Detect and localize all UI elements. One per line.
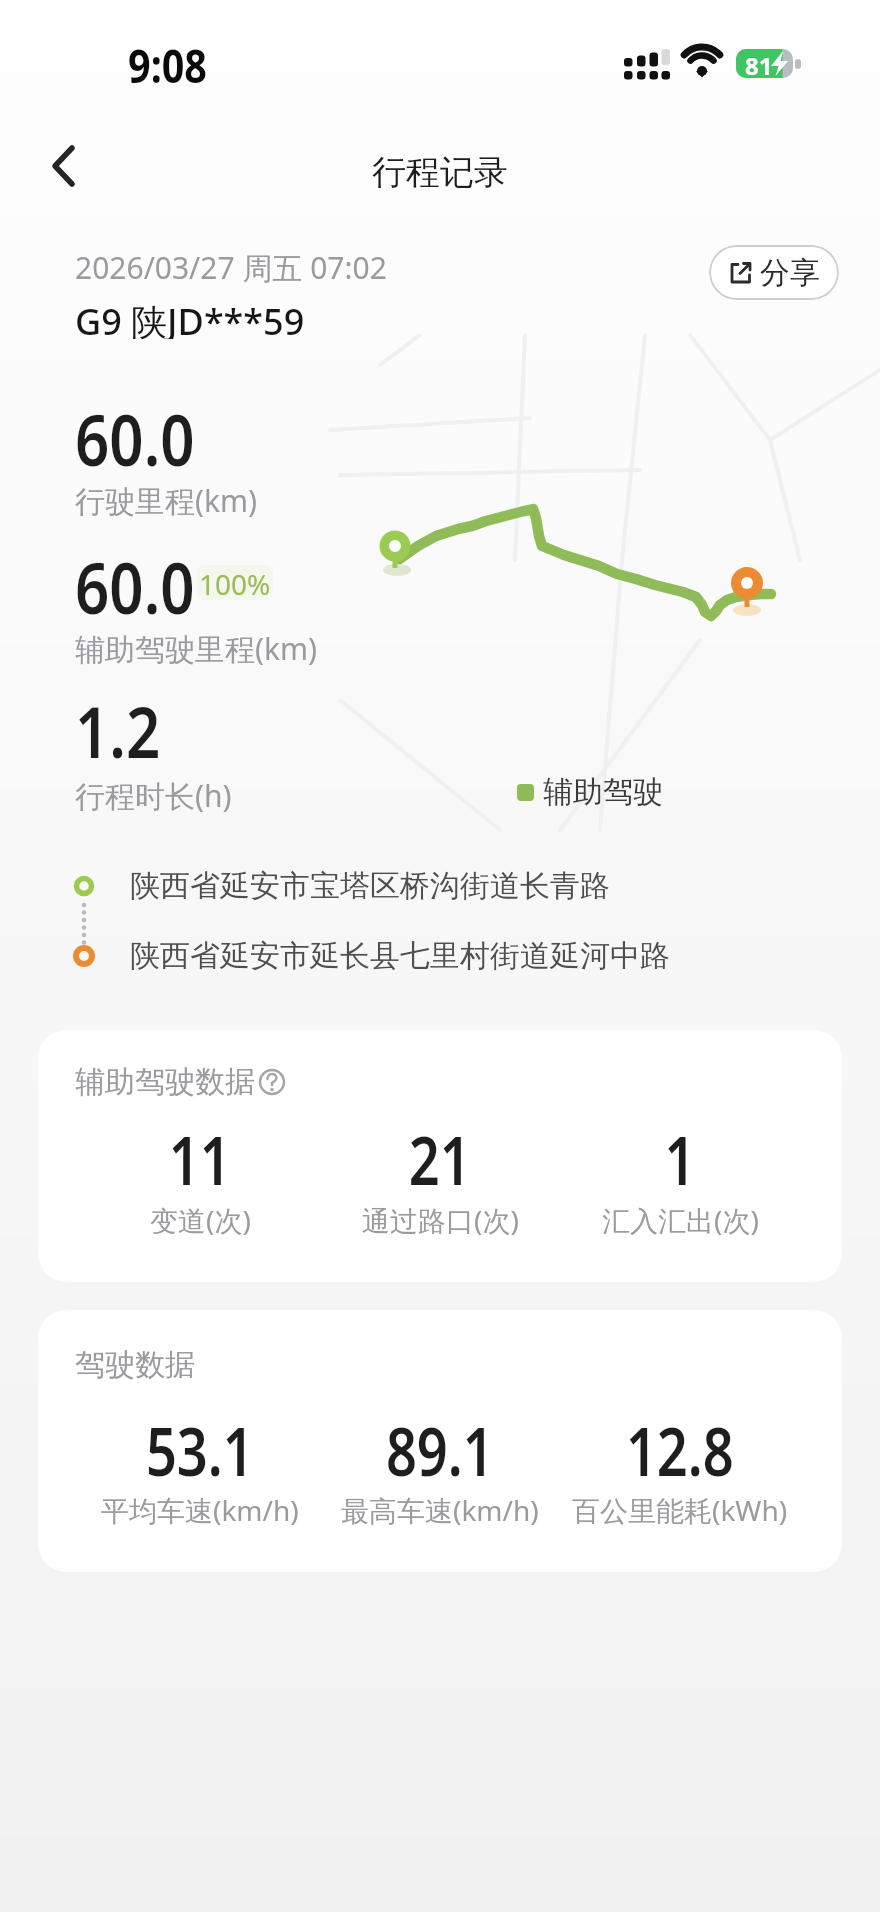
- staticText: 陕西省延安市宝塔区桥沟街道长青路: [130, 867, 610, 905]
- staticText: 9:08: [128, 34, 207, 97]
- button[interactable]: [36, 138, 92, 194]
- staticText: 汇入汇出(次): [602, 1201, 759, 1239]
- staticText: 最高车速(km/h): [341, 1491, 539, 1529]
- staticText: G9 陕JD***59: [75, 297, 305, 339]
- staticText: 60.0: [75, 390, 195, 487]
- staticText: 通过路口(次): [362, 1201, 519, 1239]
- staticText: 12.8: [626, 1405, 734, 1495]
- staticText: 21: [409, 1114, 471, 1204]
- staticText: 驾驶数据: [75, 1346, 195, 1384]
- staticText: 60.0: [75, 538, 195, 635]
- staticText: 辅助驾驶数据: [75, 1063, 255, 1101]
- staticText: 100%: [199, 565, 271, 600]
- staticText: 辅助驾驶里程(km): [75, 628, 318, 668]
- staticText: 辅助驾驶: [543, 773, 663, 811]
- button[interactable]: 分享: [709, 245, 839, 300]
- staticText: 1.2: [75, 682, 160, 779]
- staticText: 53.1: [146, 1405, 254, 1495]
- staticText: 81: [745, 49, 773, 78]
- staticText: 1: [664, 1114, 696, 1204]
- staticText: 行程时长(h): [75, 775, 232, 815]
- staticText: 行程记录: [372, 151, 508, 194]
- staticText: 陕西省延安市延长县七里村街道延河中路: [130, 937, 670, 975]
- staticText: 11: [169, 1114, 231, 1204]
- button[interactable]: [257, 1067, 287, 1097]
- staticText: 89.1: [386, 1405, 494, 1495]
- staticText: 2026/03/27 周五 07:02: [75, 247, 387, 287]
- staticText: 分享: [760, 254, 820, 292]
- staticText: 变道(次): [150, 1201, 251, 1239]
- staticText: 行驶里程(km): [75, 480, 258, 520]
- staticText: 百公里能耗(kWh): [572, 1491, 788, 1529]
- staticText: 平均车速(km/h): [101, 1491, 299, 1529]
